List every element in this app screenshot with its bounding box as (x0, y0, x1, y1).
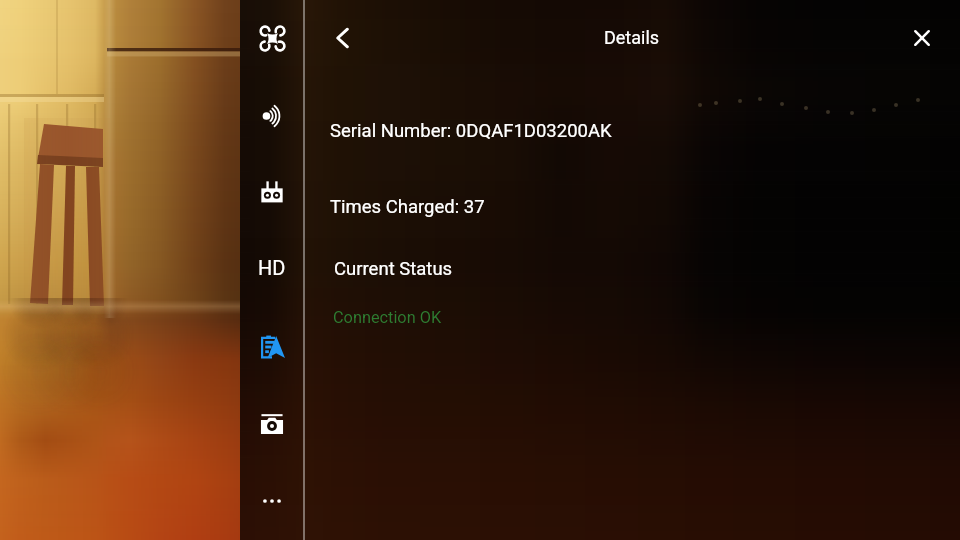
button[interactable]: Remote controller (248, 170, 296, 214)
button[interactable]: Signal strength (248, 94, 296, 138)
button[interactable]: More options (248, 479, 296, 523)
button[interactable]: Back (321, 16, 365, 60)
staticText: Details (604, 27, 660, 48)
button[interactable]: Aircraft status (248, 16, 296, 60)
staticText: Current Status (334, 258, 453, 280)
staticText: Connection OK (333, 308, 442, 327)
button[interactable]: Close (900, 16, 944, 60)
staticText: Times Charged: 37 (330, 196, 485, 218)
staticText: HD (258, 256, 286, 279)
button[interactable]: Camera settings (248, 402, 296, 446)
button[interactable]: HD (250, 249, 294, 285)
staticText: Serial Number: 0DQAF1D03200AK (330, 120, 612, 142)
button[interactable]: Flight records (248, 325, 296, 369)
